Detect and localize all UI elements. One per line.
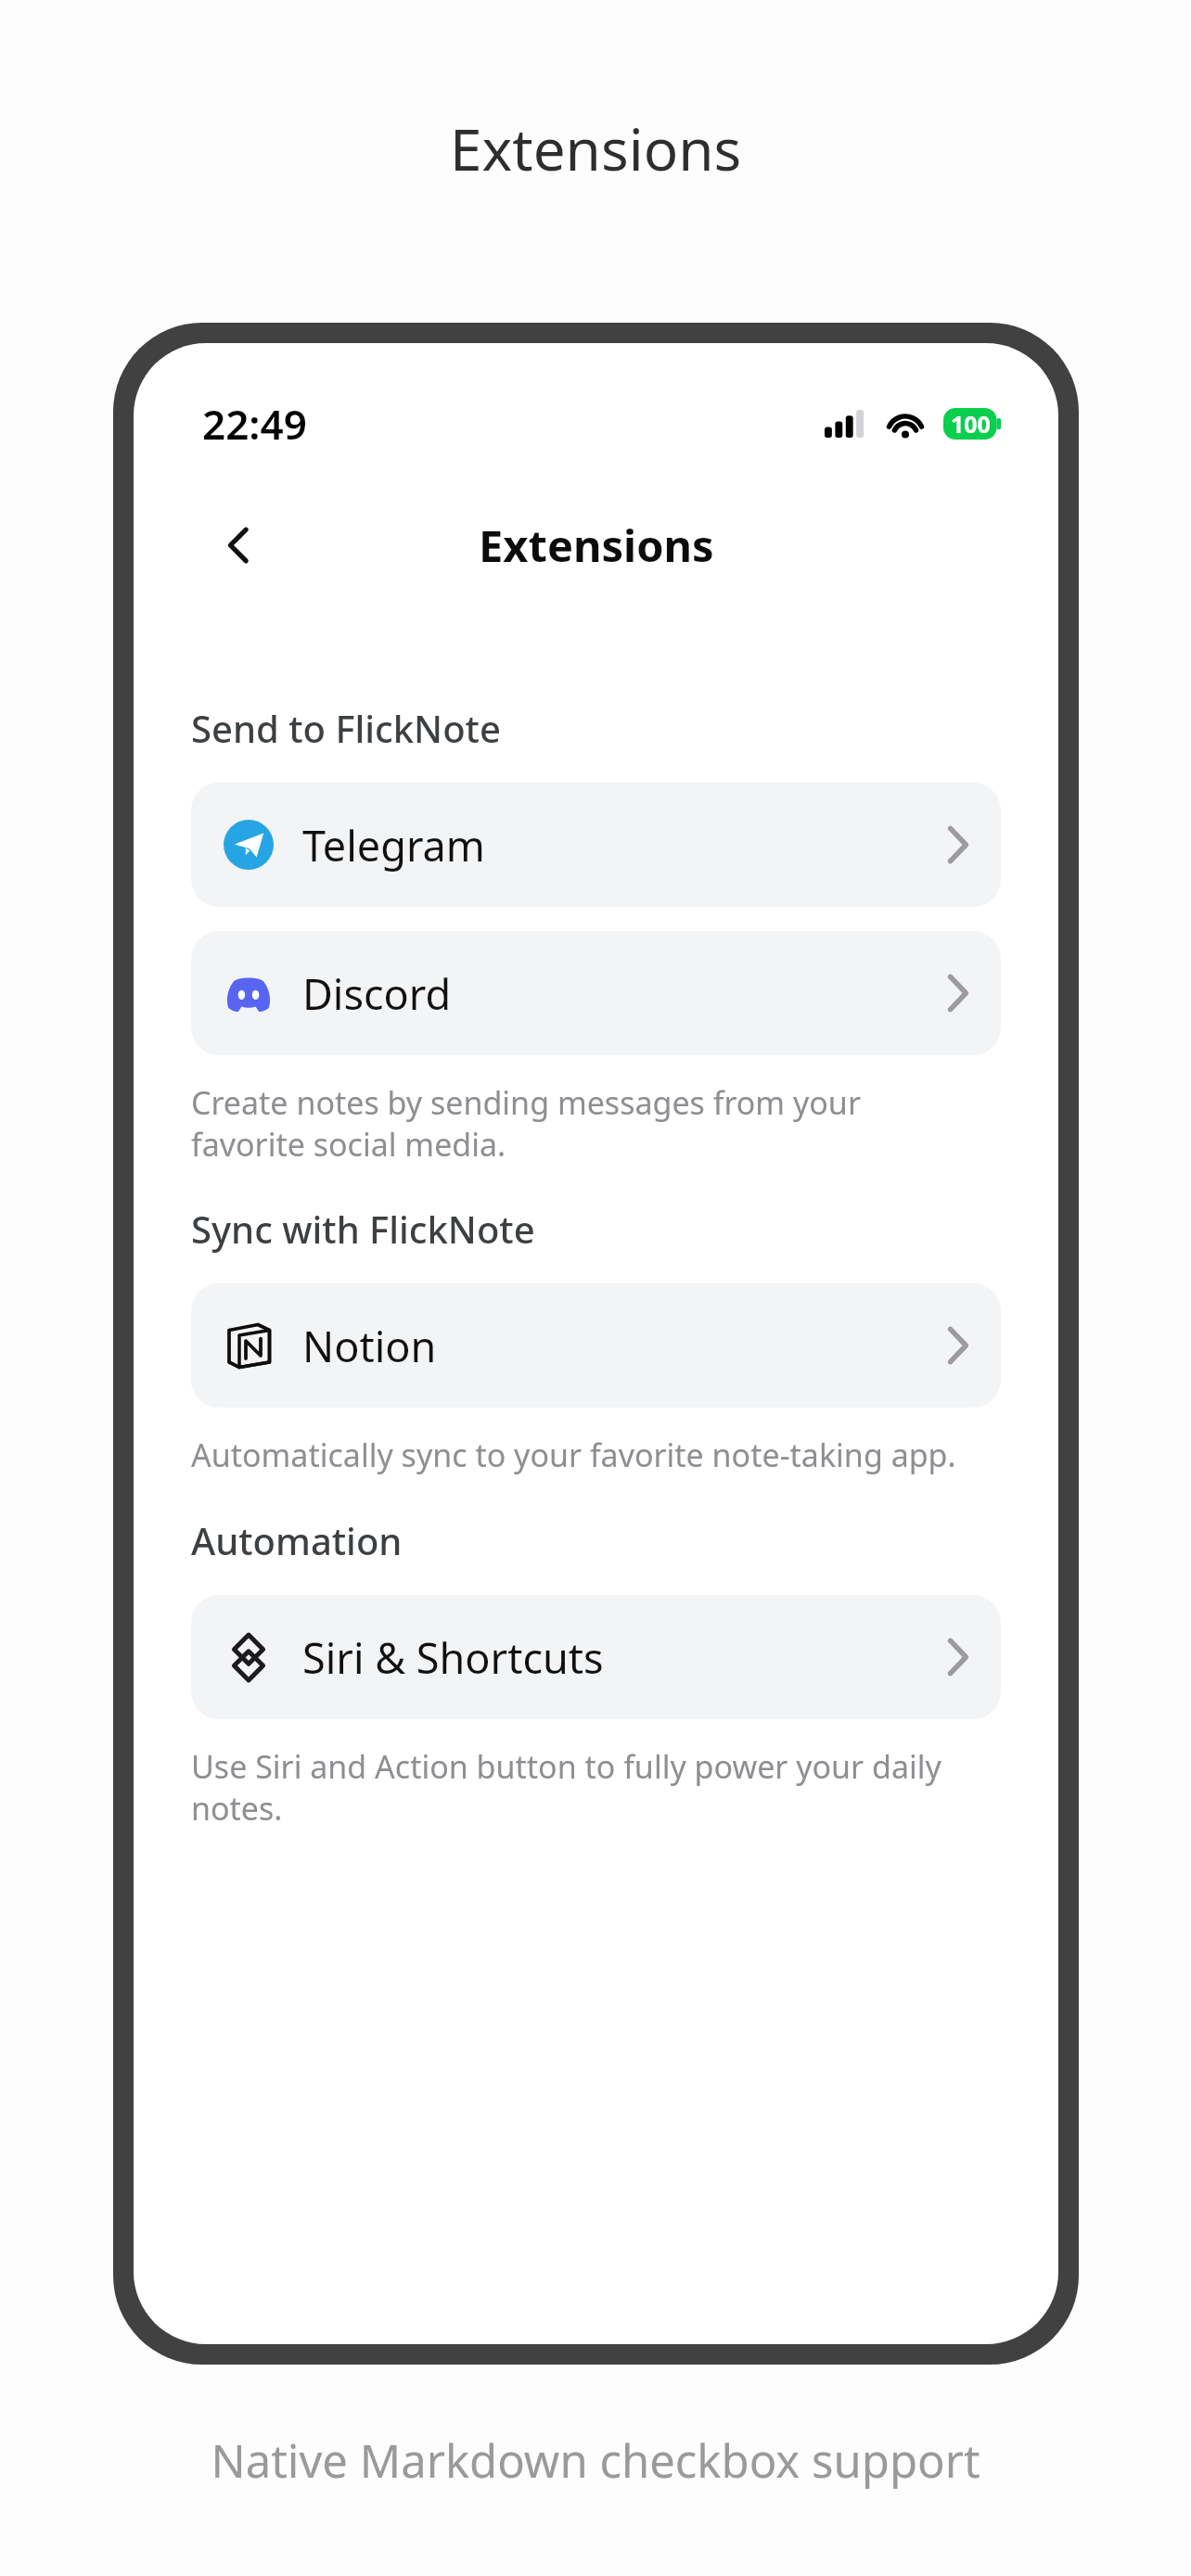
button[interactable]: Siri & Shortcuts <box>191 1595 1001 1719</box>
staticText: Send to FlickNote <box>191 703 501 753</box>
staticText: Telegram <box>302 817 485 874</box>
staticText: Discord <box>302 965 452 1022</box>
staticText: Notion <box>302 1318 437 1374</box>
staticText: Automatically sync to your favorite note… <box>191 1434 956 1476</box>
staticText: Use Siri and Action button to fully powe… <box>191 1745 973 1829</box>
staticText: Create notes by sending messages from yo… <box>191 1081 973 1165</box>
staticText: Automation <box>191 1515 403 1565</box>
button[interactable]: Telegram <box>191 783 1001 907</box>
staticText: Extensions <box>479 516 714 575</box>
staticText: 100 <box>951 408 991 440</box>
staticText: Native Markdown checkbox support <box>211 2429 980 2492</box>
staticText: 22:49 <box>202 396 307 452</box>
staticText: Siri & Shortcuts <box>302 1629 604 1686</box>
staticText: Extensions <box>450 109 742 187</box>
button[interactable]: Back <box>191 497 288 593</box>
button[interactable]: Notion <box>191 1283 1001 1408</box>
staticText: Sync with FlickNote <box>191 1204 535 1254</box>
button[interactable]: Discord <box>191 931 1001 1055</box>
